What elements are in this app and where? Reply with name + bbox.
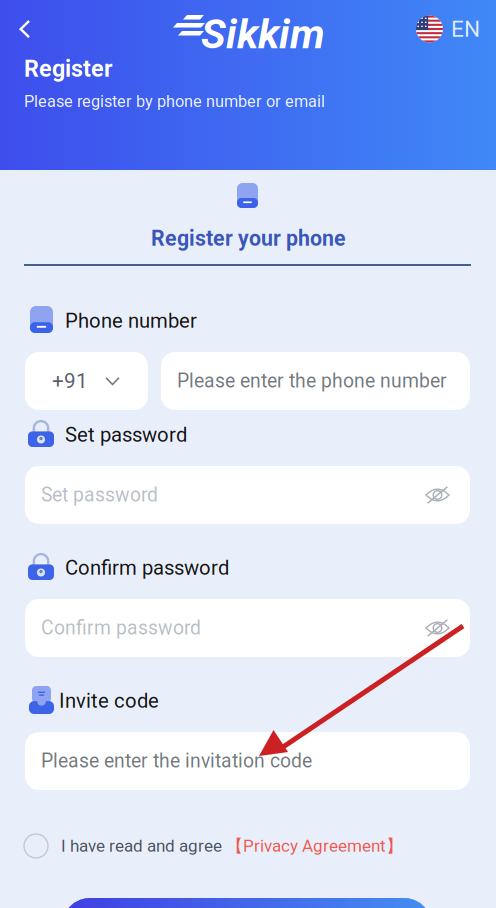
button[interactable]: Back — [5, 9, 45, 49]
staticText: Please register by phone number or email — [24, 92, 325, 111]
staticText: EN — [451, 16, 480, 42]
staticText: +91 — [52, 369, 88, 393]
staticText: Register your phone — [151, 226, 346, 251]
staticText: I have read and agree — [61, 836, 222, 856]
button[interactable]: Register your phone — [0, 0, 496, 268]
staticText: Sikkim — [201, 10, 325, 58]
staticText: Please enter the invitation code — [41, 750, 312, 772]
staticText: Confirm password — [65, 556, 229, 580]
staticText: Please enter the phone number — [177, 370, 447, 392]
button[interactable]: EN — [416, 14, 480, 44]
staticText: 【Privacy Agreement】 — [226, 835, 403, 857]
staticText: Set password — [65, 423, 187, 447]
staticText: Invite code — [59, 689, 159, 713]
button[interactable] — [62, 898, 432, 908]
staticText: Register — [24, 55, 113, 82]
staticText: Confirm password — [41, 617, 201, 639]
staticText: Phone number — [65, 309, 197, 333]
staticText: Set password — [41, 484, 158, 506]
button[interactable]: +91 — [25, 352, 148, 410]
button[interactable]: I have read and agree — [24, 830, 454, 862]
